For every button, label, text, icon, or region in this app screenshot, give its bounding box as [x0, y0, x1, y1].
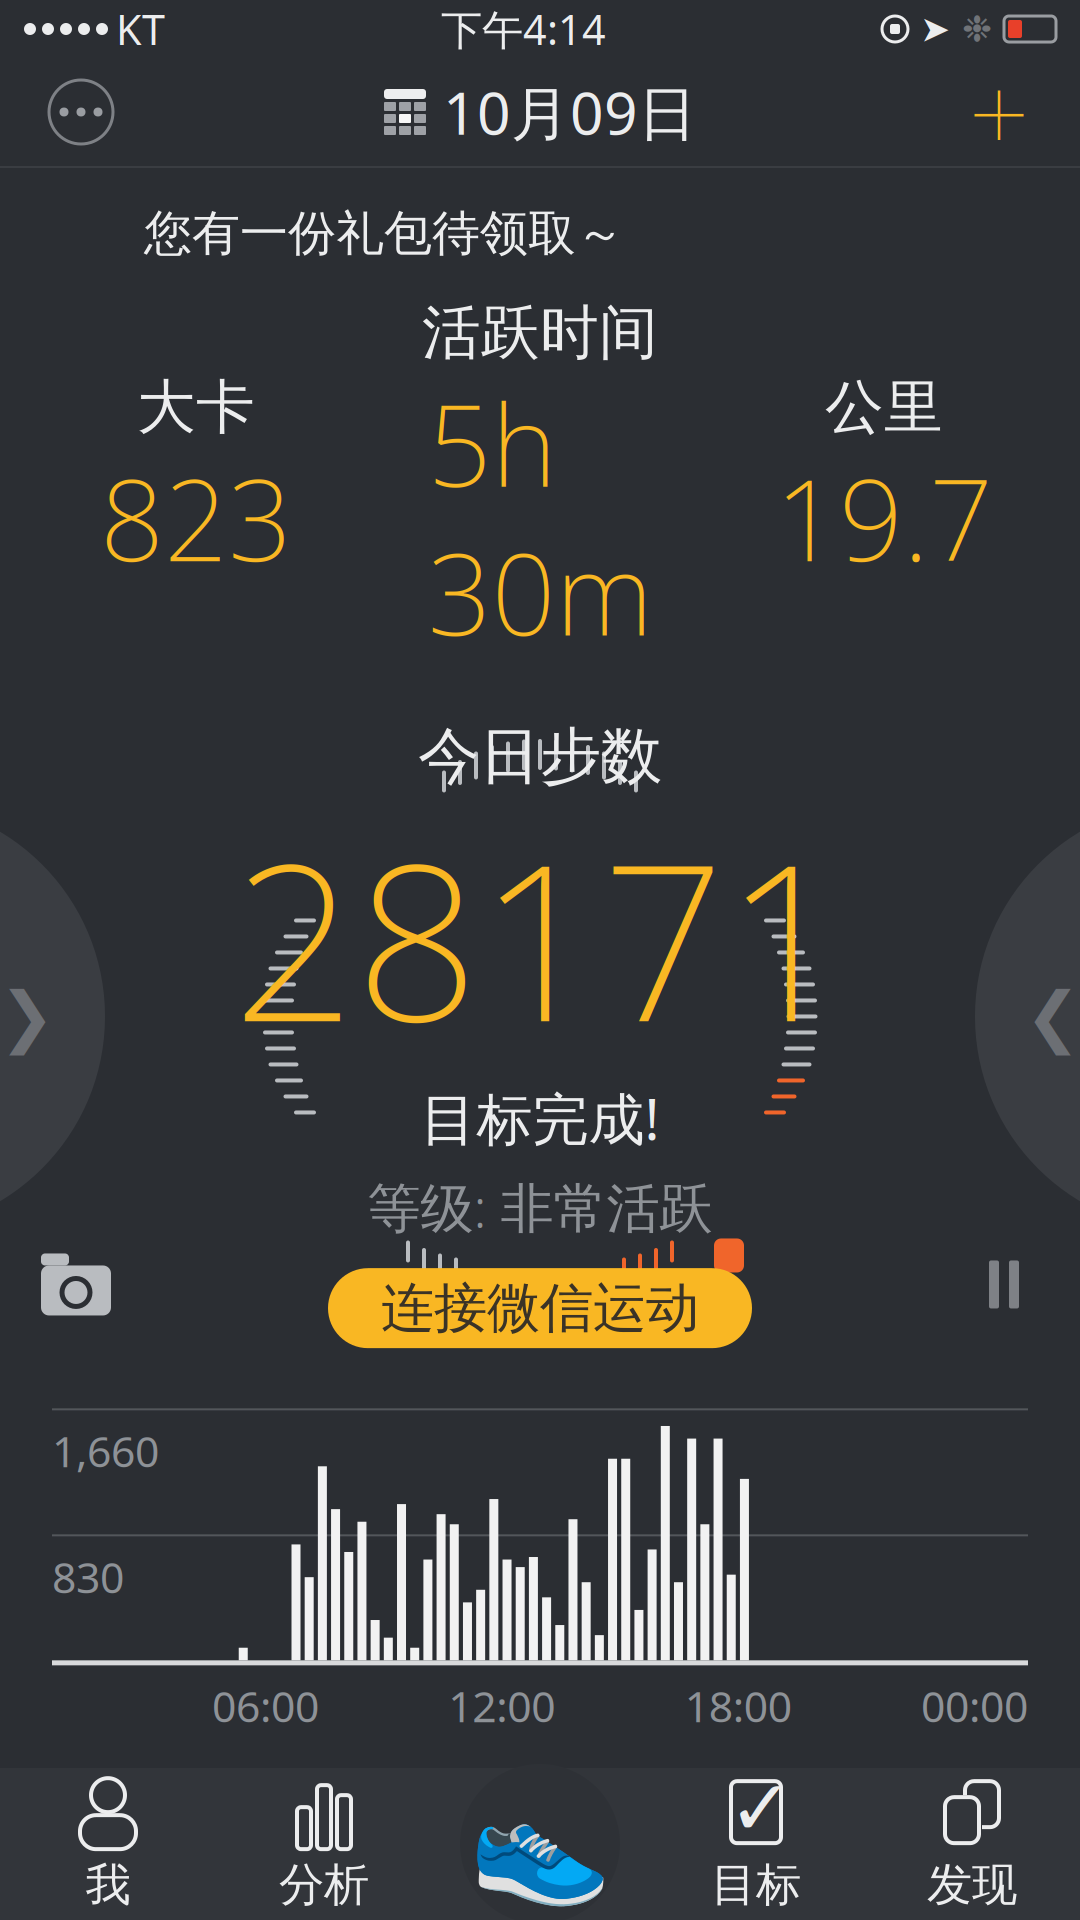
- staticText: 您有一份礼包待领取～: [144, 204, 624, 263]
- button[interactable]: Messages: [26, 58, 136, 166]
- staticText: ✓: [728, 1764, 793, 1852]
- staticText: 00:00: [921, 1677, 1028, 1734]
- staticText: 28171: [232, 794, 847, 1081]
- button[interactable]: Pause: [962, 1242, 1046, 1326]
- staticText: ➤: [920, 9, 950, 49]
- button[interactable]: 您有一份礼包待领取～: [144, 194, 624, 273]
- staticText: 活跃时间: [422, 297, 658, 369]
- button[interactable]: Steps: [432, 1769, 648, 1919]
- button[interactable]: Previous day: [0, 801, 110, 1231]
- button[interactable]: 连接微信运动: [328, 1268, 752, 1348]
- staticText: 我: [85, 1857, 130, 1913]
- button[interactable]: Next day: [970, 801, 1080, 1231]
- staticText: 公里: [825, 371, 943, 443]
- staticText: 分析: [279, 1857, 369, 1913]
- staticText: 10月09日: [443, 73, 697, 151]
- staticText: 5h 30m: [427, 369, 652, 666]
- staticText: 下午4:14: [441, 2, 606, 56]
- button[interactable]: Add: [944, 58, 1054, 166]
- button[interactable]: Camera: [34, 1242, 118, 1326]
- staticText: 连接微信运动: [381, 1275, 699, 1341]
- staticText: ❯: [0, 979, 55, 1054]
- staticText: 等级: 非常活跃: [367, 1171, 712, 1242]
- staticText: 大卡: [137, 371, 255, 443]
- staticText: 👟: [468, 1778, 611, 1909]
- staticText: 19.7: [775, 443, 993, 592]
- staticText: 823: [100, 443, 292, 592]
- staticText: 830: [52, 1548, 124, 1605]
- staticText: KT: [116, 2, 165, 56]
- staticText: ❉: [962, 9, 992, 49]
- staticText: ❮: [1025, 979, 1080, 1054]
- staticText: 18:00: [685, 1677, 792, 1734]
- button[interactable]: 我: [0, 1769, 216, 1919]
- button[interactable]: 发现: [864, 1769, 1080, 1919]
- button[interactable]: 分析: [216, 1769, 432, 1919]
- staticText: 发现: [927, 1857, 1017, 1913]
- staticText: 06:00: [212, 1677, 319, 1734]
- button[interactable]: ✓: [648, 1769, 864, 1919]
- staticText: +: [968, 41, 1029, 183]
- staticText: 12:00: [448, 1677, 555, 1734]
- staticText: 目标完成!: [420, 1081, 659, 1155]
- staticText: 目标: [711, 1857, 801, 1913]
- staticText: 1,660: [52, 1422, 159, 1479]
- button[interactable]: 10月09日: [367, 58, 713, 166]
- staticText: 今日步数: [418, 719, 662, 794]
